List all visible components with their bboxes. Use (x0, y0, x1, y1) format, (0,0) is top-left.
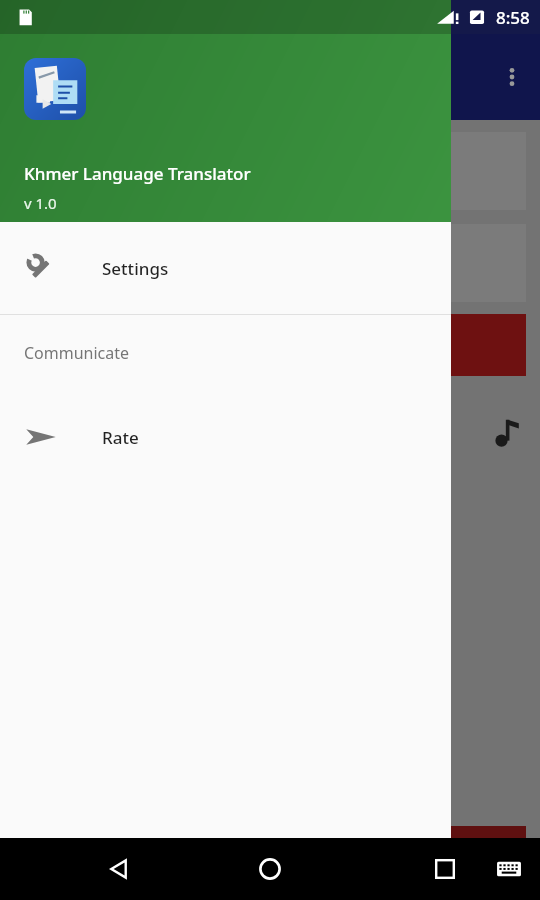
other: Settings (25, 252, 57, 284)
staticText: Settings (102, 257, 169, 280)
staticText: Khmer Language Translator (24, 162, 251, 185)
other: Rate (25, 421, 57, 453)
button[interactable]: Rate (0, 391, 451, 483)
staticText: Rate (102, 426, 139, 449)
button[interactable]: Play audio (490, 414, 526, 450)
button[interactable]: Recent apps (418, 842, 472, 896)
staticText: Communicate (24, 342, 130, 364)
button[interactable]: Back (92, 842, 146, 896)
button[interactable]: Google (14, 826, 526, 900)
button[interactable]: CLEAR (14, 314, 526, 376)
button[interactable]: Switch keyboard (484, 844, 534, 894)
staticText: 8:58 (496, 6, 530, 29)
button[interactable]: More options (484, 49, 540, 105)
button[interactable]: Settings (0, 222, 451, 314)
staticText: v 1.0 (24, 193, 57, 213)
button[interactable]: Home (243, 842, 297, 896)
